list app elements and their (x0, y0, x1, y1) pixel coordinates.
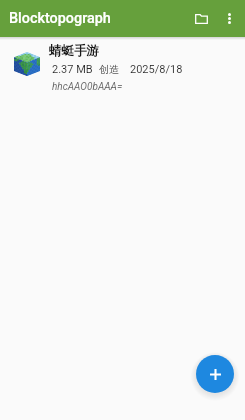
button[interactable]: Open folder (189, 6, 214, 31)
button[interactable]: More options (218, 7, 241, 30)
button[interactable]: Add world (196, 355, 234, 393)
staticText: 创造 (99, 63, 119, 76)
button[interactable]: 蜻蜓手游 (0, 40, 245, 98)
staticText: 2.37 MB (52, 63, 93, 76)
staticText: Blocktopograph (9, 10, 111, 27)
staticText: hhcAAO0bAAA= (52, 81, 123, 93)
staticText: 蜻蜓手游 (49, 43, 99, 59)
staticText: 2025/8/18 (130, 63, 183, 76)
